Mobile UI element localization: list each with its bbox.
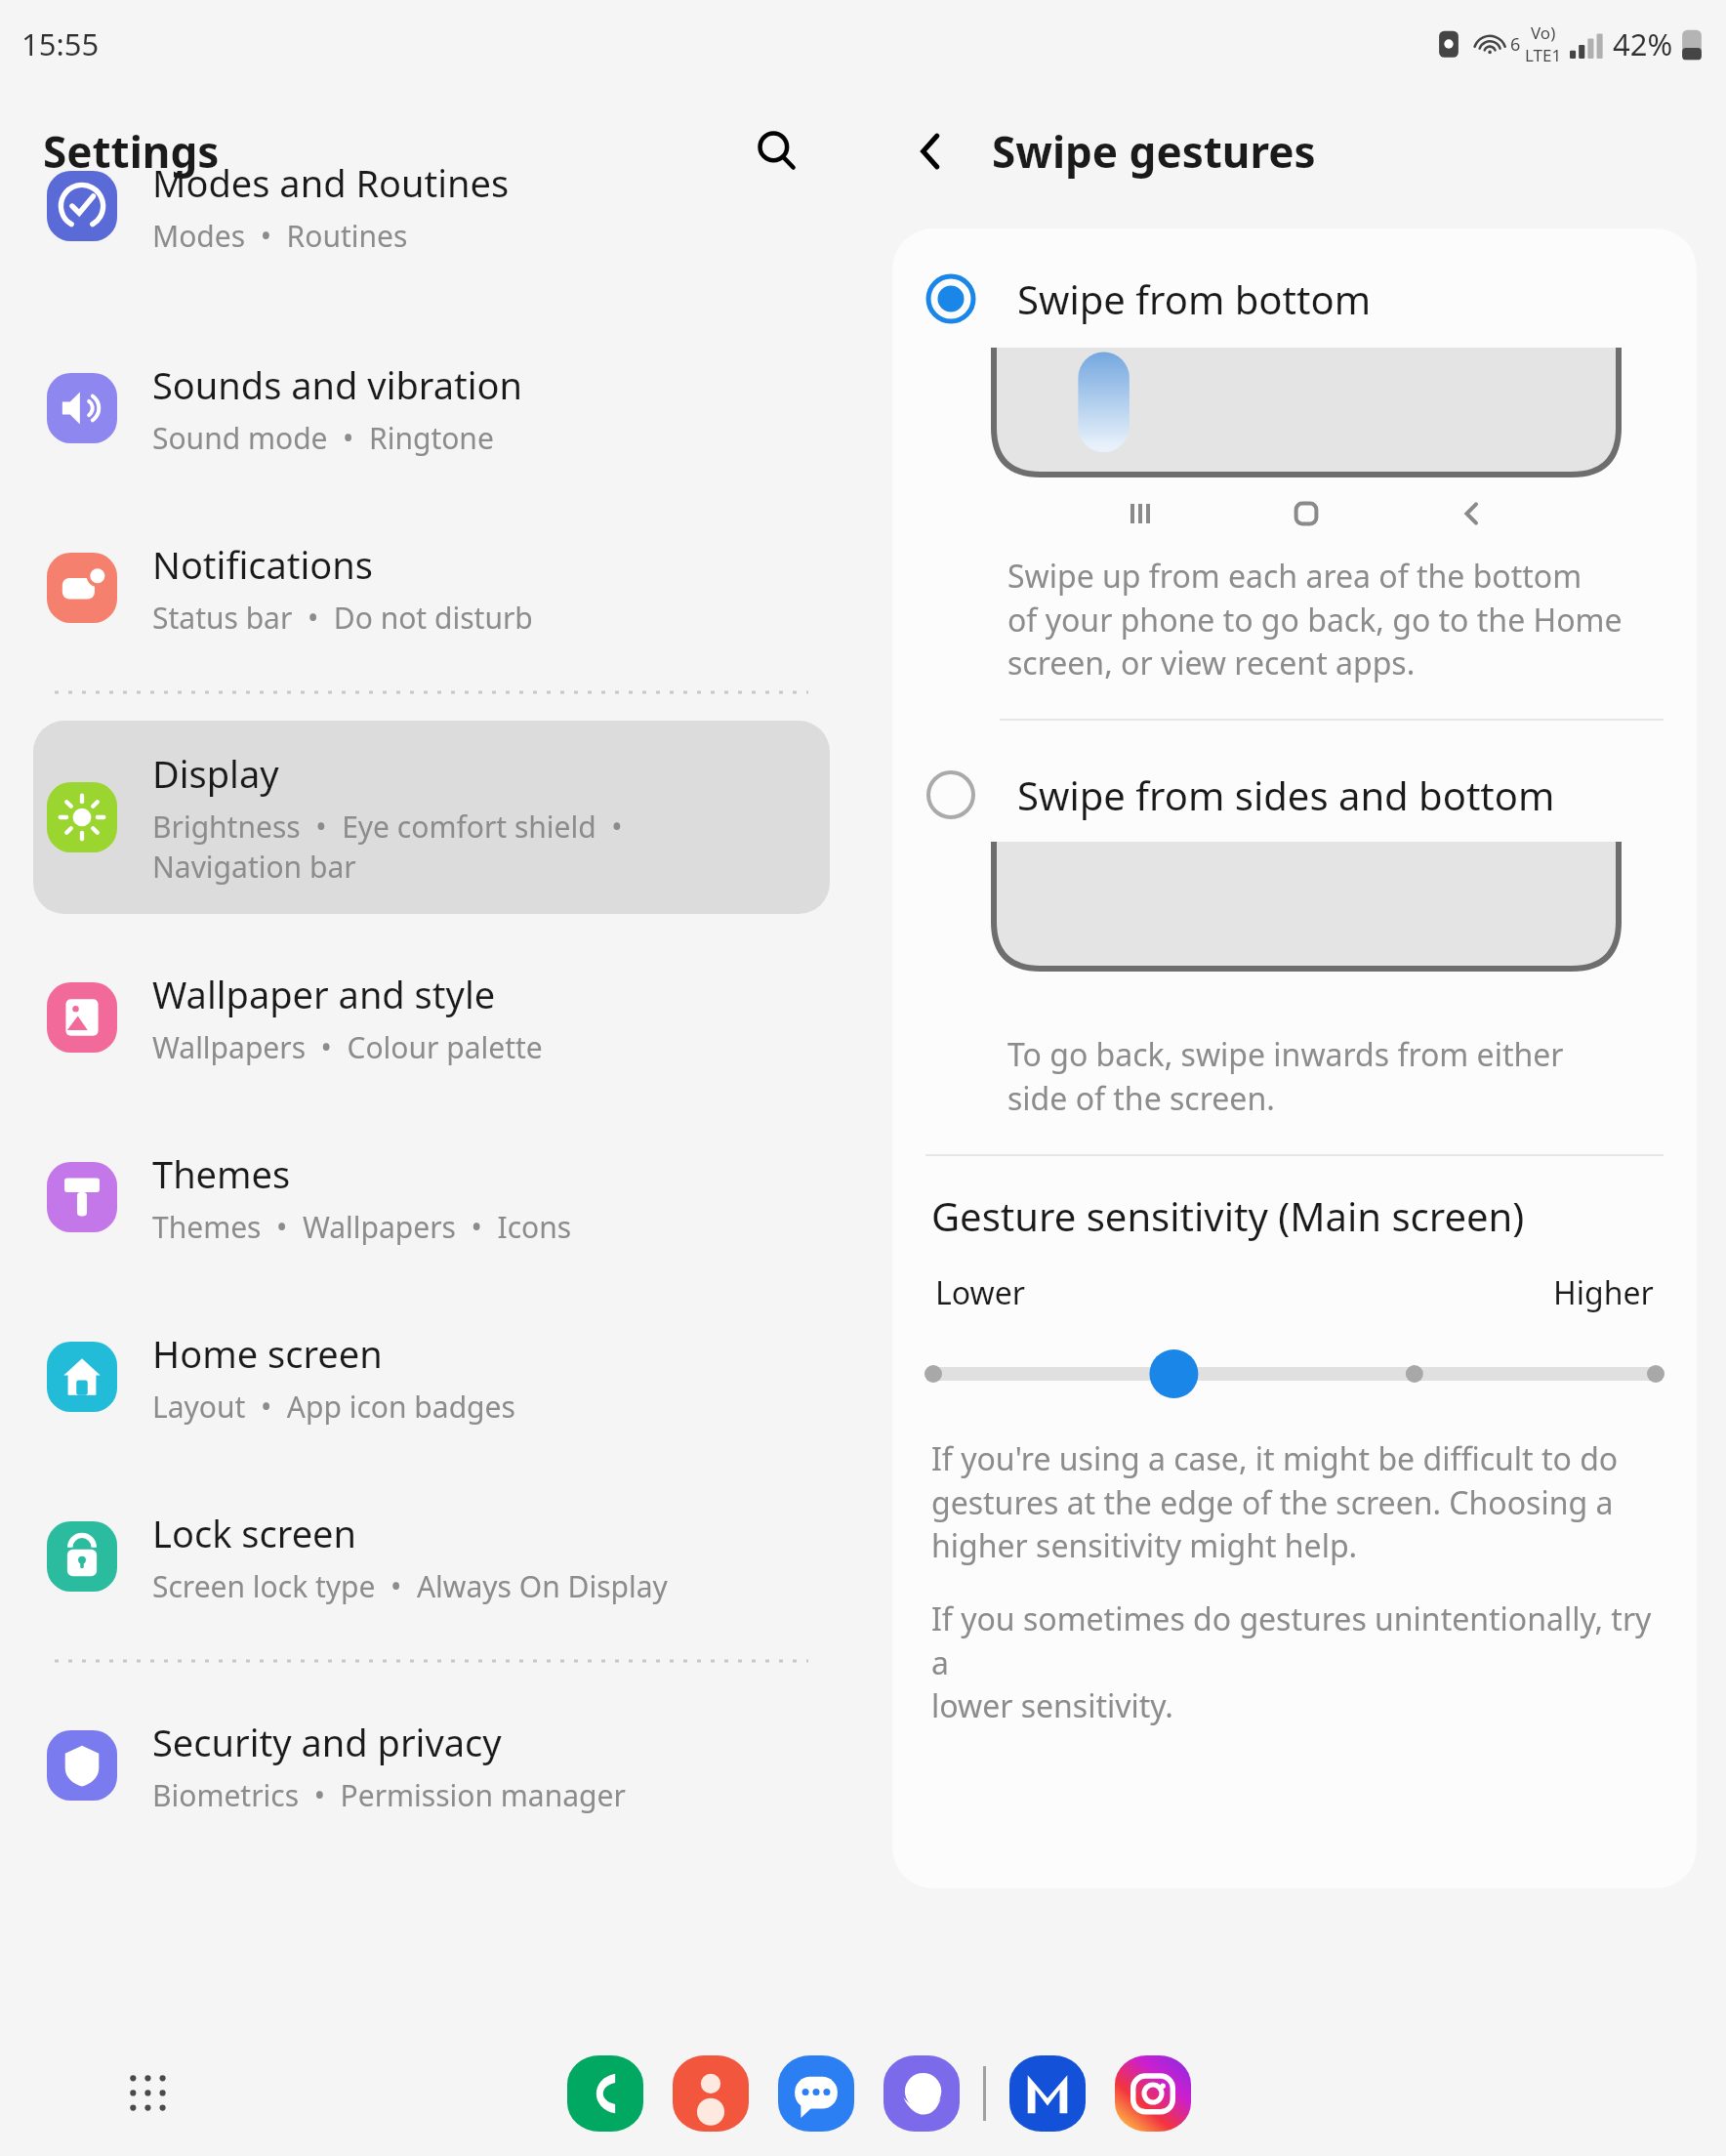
staticText: Wallpapers • Colour palette — [152, 1027, 543, 1067]
staticText: Brightness • Eye comfort shield • — [152, 807, 623, 847]
staticText: Home screen — [152, 1328, 383, 1379]
staticText: Themes — [152, 1148, 291, 1199]
staticText: Modes and Routines — [152, 157, 510, 208]
staticText: Settings — [43, 122, 220, 181]
staticText: Sound mode • Ringtone — [152, 418, 494, 458]
button[interactable]: Security and privacy — [0, 1676, 863, 1855]
staticText: Sounds and vibration — [152, 359, 523, 410]
button[interactable]: Contacts — [671, 2053, 751, 2134]
button[interactable]: Swipe from sides and bottom — [892, 748, 1697, 842]
staticText: Lower — [935, 1271, 1025, 1314]
button[interactable]: Apps — [109, 2054, 187, 2133]
button[interactable]: Phone — [565, 2053, 645, 2134]
button[interactable]: Wallpaper and style — [0, 928, 863, 1107]
staticText: 15:55 — [21, 23, 100, 64]
button[interactable]: Display — [33, 721, 830, 914]
staticText: 6 — [1510, 32, 1521, 57]
staticText: Swipe from sides and bottom — [1017, 768, 1555, 821]
button[interactable]: Messages — [776, 2053, 856, 2134]
staticText: Higher — [1553, 1271, 1654, 1314]
staticText: Lock screen — [152, 1508, 357, 1558]
staticText: Status bar • Do not disturb — [152, 598, 533, 638]
button[interactable]: Instagram — [1113, 2053, 1193, 2134]
staticText: Navigation bar — [152, 847, 356, 887]
staticText: Modes • Routines — [152, 216, 408, 256]
staticText: If you sometimes do gestures unintention… — [931, 1597, 1664, 1726]
staticText: Vo) — [1531, 21, 1556, 44]
button[interactable]: Notifications — [0, 498, 863, 678]
button[interactable]: Lock screen — [0, 1467, 863, 1646]
button[interactable]: Gesture sensitivity slider — [892, 1340, 1697, 1408]
staticText: 42% — [1613, 23, 1673, 64]
staticText: Swipe from bottom — [1017, 272, 1372, 325]
staticText: To go back, swipe inwards from either si… — [1007, 1033, 1564, 1119]
button[interactable]: Sounds and vibration — [0, 318, 863, 498]
button[interactable]: Modes and Routines — [0, 154, 863, 258]
button[interactable]: Swipe from bottom — [892, 250, 1697, 348]
staticText: Themes • Wallpapers • Icons — [152, 1207, 572, 1247]
staticText: Wallpaper and style — [152, 969, 496, 1019]
staticText: Notifications — [152, 539, 374, 590]
staticText: Gesture sensitivity (Main screen) — [931, 1189, 1525, 1242]
staticText: Screen lock type • Always On Display — [152, 1566, 668, 1606]
staticText: Swipe up from each area of the bottom of… — [1007, 555, 1623, 684]
button[interactable]: Back — [892, 112, 970, 190]
staticText: Swipe gestures — [992, 122, 1316, 181]
staticText: Biometrics • Permission manager — [152, 1775, 626, 1815]
button[interactable]: Themes — [0, 1107, 863, 1287]
button[interactable]: Home screen — [0, 1287, 863, 1467]
staticText: If you're using a case, it might be diff… — [931, 1437, 1619, 1566]
button[interactable]: Mail — [1007, 2053, 1088, 2134]
staticText: LTE1 — [1525, 44, 1562, 66]
staticText: Display — [152, 748, 279, 799]
staticText: Security and privacy — [152, 1717, 502, 1767]
button[interactable]: Internet — [882, 2053, 962, 2134]
button[interactable]: Search — [742, 116, 812, 187]
staticText: Layout • App icon badges — [152, 1387, 515, 1427]
